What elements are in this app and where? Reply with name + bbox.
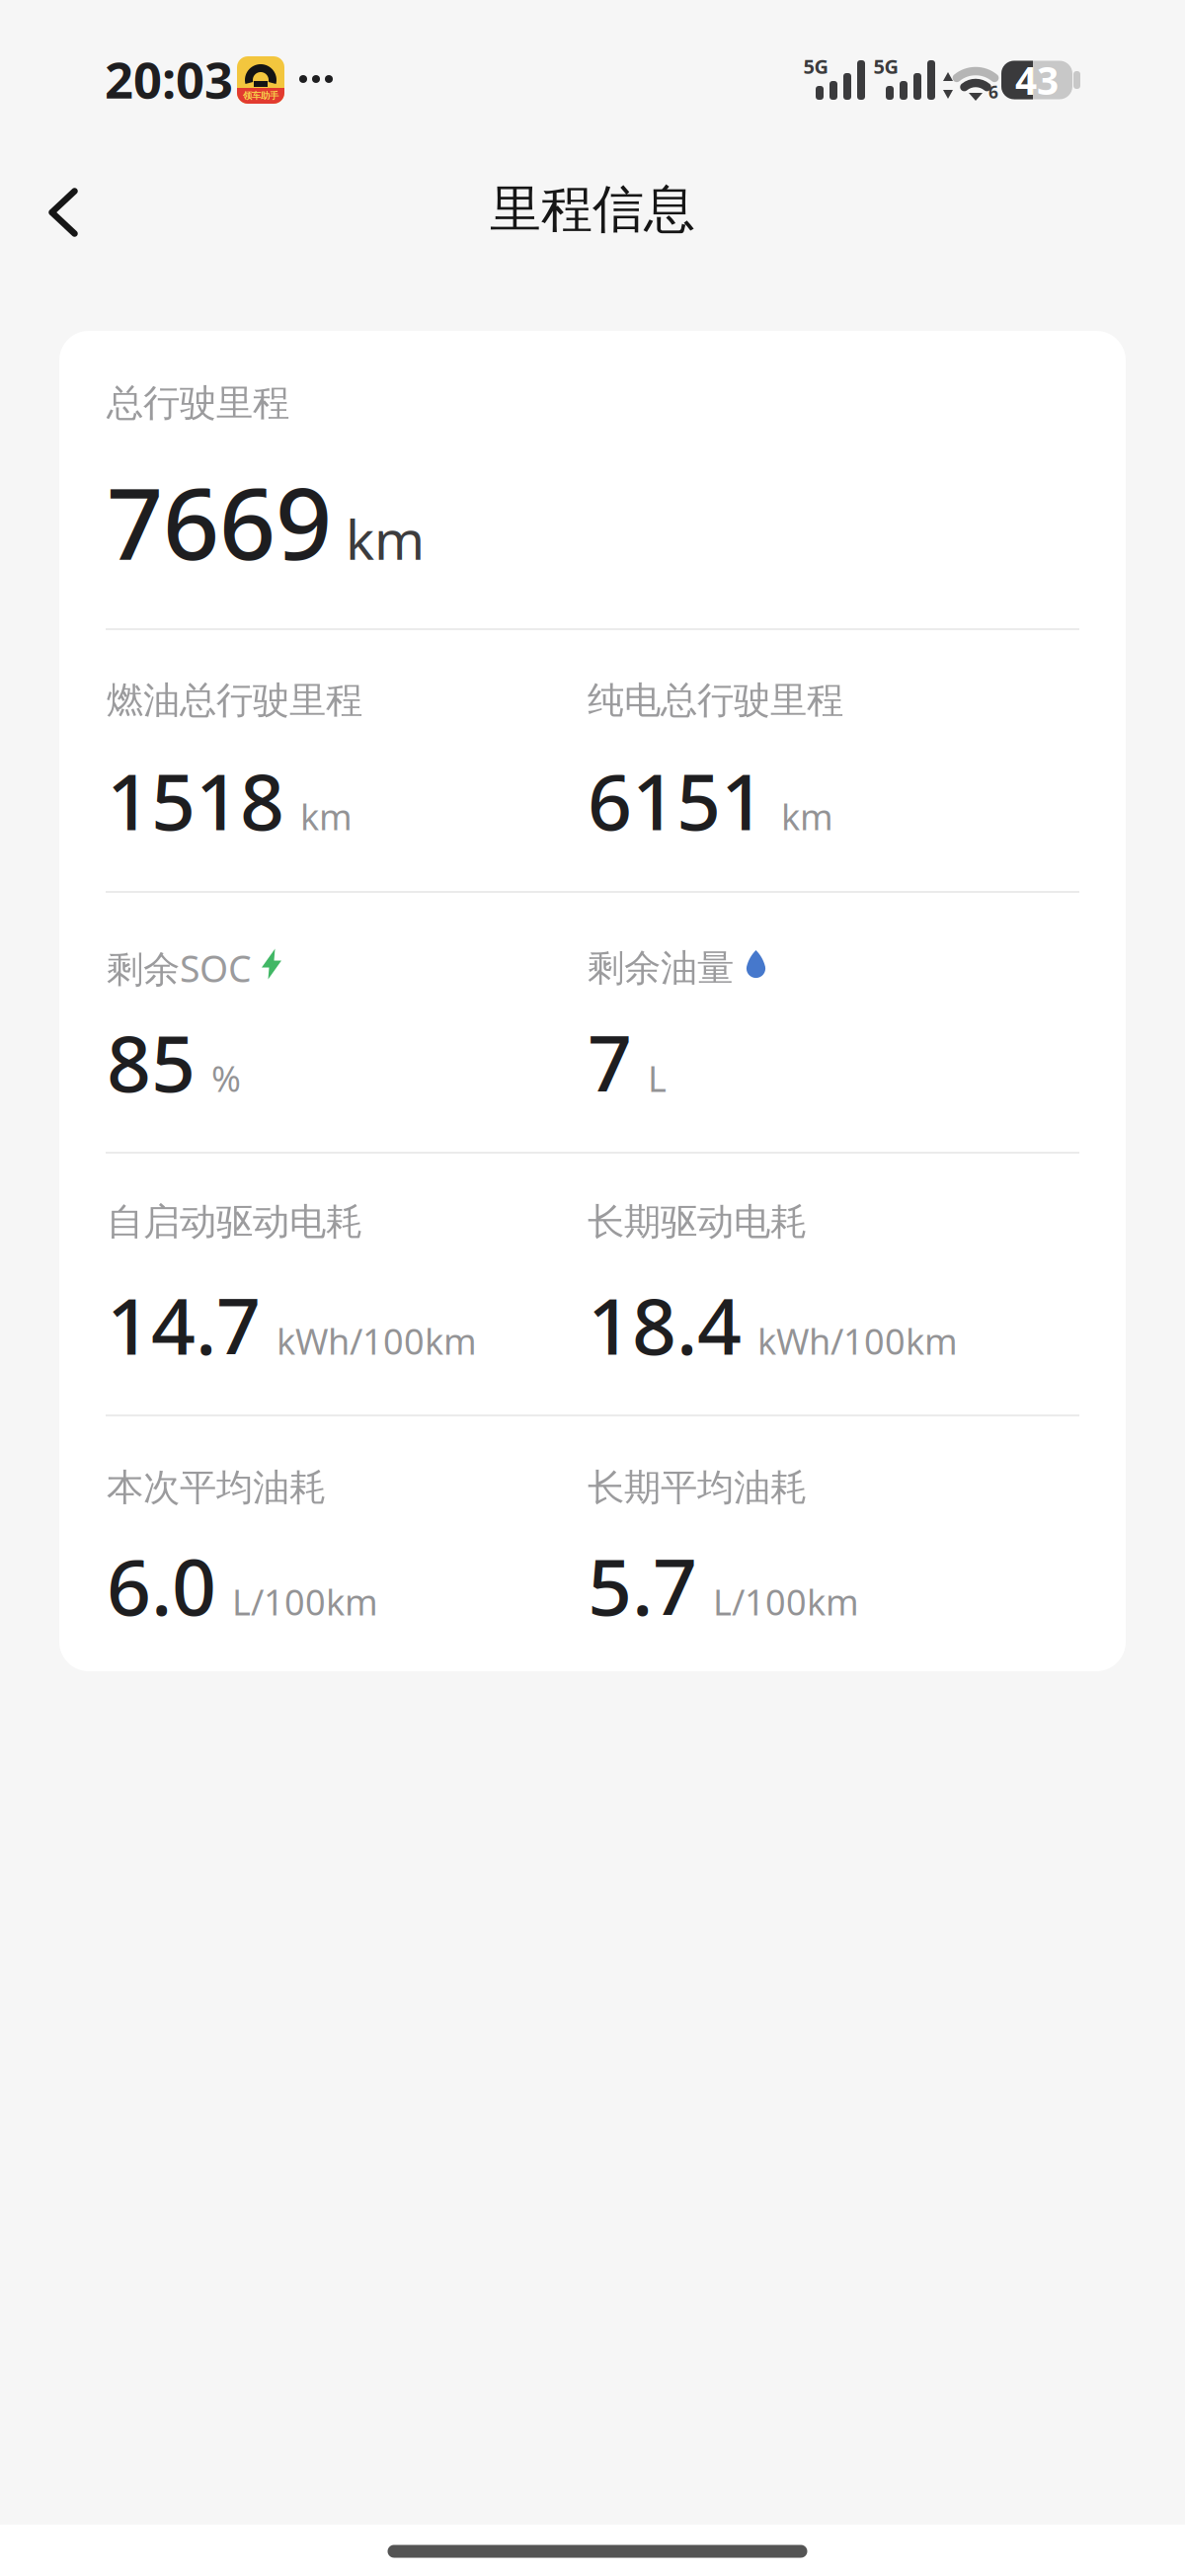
staticText: km — [300, 793, 353, 840]
staticText: 7669 — [107, 456, 332, 587]
staticText: 里程信息 — [490, 178, 695, 241]
staticText: 18.4 — [588, 1273, 742, 1376]
staticText: 自启动驱动电耗 — [107, 1199, 362, 1245]
button[interactable]: Back — [19, 168, 108, 257]
staticText: % — [211, 1055, 241, 1102]
staticText: 7 — [588, 1010, 632, 1113]
staticText: km — [346, 503, 425, 575]
staticText: km — [781, 793, 833, 840]
staticText: 总行驶里程 — [107, 380, 289, 426]
staticText: 14.7 — [107, 1273, 261, 1376]
staticText: 1518 — [107, 749, 284, 852]
staticText: L/100km — [713, 1578, 859, 1625]
staticText: 6151 — [588, 749, 765, 852]
staticText: 领车助手 — [243, 90, 278, 102]
staticText: kWh/100km — [276, 1317, 477, 1365]
staticText: 20:03 — [105, 46, 233, 112]
staticText: L/100km — [232, 1578, 378, 1625]
staticText: 剩余油量 — [588, 945, 734, 991]
staticText: 6.0 — [107, 1534, 216, 1637]
staticText: 5G — [873, 53, 898, 79]
staticText: 5G — [803, 53, 828, 79]
staticText: kWh/100km — [757, 1317, 958, 1365]
staticText: 长期平均油耗 — [588, 1465, 807, 1510]
staticText: 燃油总行驶里程 — [107, 678, 362, 723]
staticText: 6 — [988, 80, 998, 103]
staticText: 85 — [107, 1010, 196, 1113]
staticText: 纯电总行驶里程 — [588, 678, 843, 723]
staticText: 5.7 — [588, 1534, 697, 1637]
staticText: 剩余SOC — [107, 943, 252, 992]
staticText: 本次平均油耗 — [107, 1465, 326, 1510]
staticText: L — [648, 1055, 667, 1102]
staticText: 43 — [1015, 55, 1059, 105]
staticText: 长期驱动电耗 — [588, 1199, 807, 1245]
